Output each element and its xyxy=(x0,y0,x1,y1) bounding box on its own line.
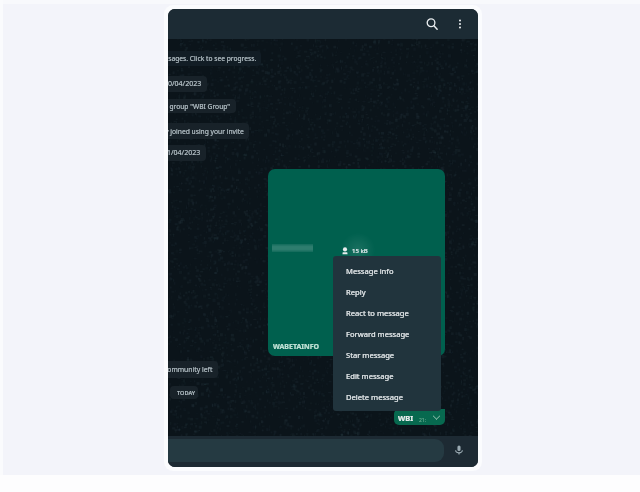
staticText: Edit message xyxy=(346,371,394,381)
button[interactable]: Reply xyxy=(333,281,441,302)
button[interactable]: Search xyxy=(420,12,444,36)
button[interactable]: TODAY xyxy=(170,386,198,399)
staticText: Forward message xyxy=(346,329,410,339)
button[interactable]: Delete message xyxy=(333,386,441,407)
staticText: 20/04/2023 xyxy=(168,79,202,89)
staticText: WBI xyxy=(398,413,414,423)
button[interactable]: Message info xyxy=(333,260,441,281)
staticText: 21/04/2023 xyxy=(168,148,201,158)
staticText: TODAY xyxy=(177,389,195,397)
button[interactable]: More options xyxy=(448,12,472,36)
staticText: messages. Click to see progress. xyxy=(168,54,257,63)
button[interactable]: 21/04/2023 xyxy=(168,145,206,161)
button[interactable]: WABETAINFO xyxy=(268,169,445,356)
staticText: React to message xyxy=(346,308,409,318)
button[interactable]: WBI xyxy=(394,409,445,425)
staticText: ody joined using your invite xyxy=(168,127,244,136)
button[interactable]: 20/04/2023 xyxy=(168,76,207,92)
staticText: 21: xyxy=(419,417,427,424)
staticText: Star message xyxy=(346,350,395,360)
staticText: WABETAINFO xyxy=(273,342,320,352)
button[interactable]: Voice message xyxy=(448,439,470,461)
staticText: 15 kB xyxy=(352,247,368,255)
staticText: Message info xyxy=(346,266,394,276)
staticText: Community left xyxy=(168,365,213,374)
button[interactable]: Edit message xyxy=(333,365,441,386)
staticText: created group "WBI Group" xyxy=(168,102,231,111)
button[interactable]: Community left xyxy=(168,361,218,378)
staticText: Reply xyxy=(346,287,366,297)
staticText: Delete message xyxy=(346,392,403,402)
button[interactable]: ody joined using your invite xyxy=(168,123,249,139)
button[interactable]: Star message xyxy=(333,344,441,365)
button[interactable]: Forward message xyxy=(333,323,441,344)
button[interactable]: messages. Click to see progress. xyxy=(168,51,261,66)
button[interactable]: React to message xyxy=(333,302,441,323)
button[interactable]: created group "WBI Group" xyxy=(168,99,236,113)
